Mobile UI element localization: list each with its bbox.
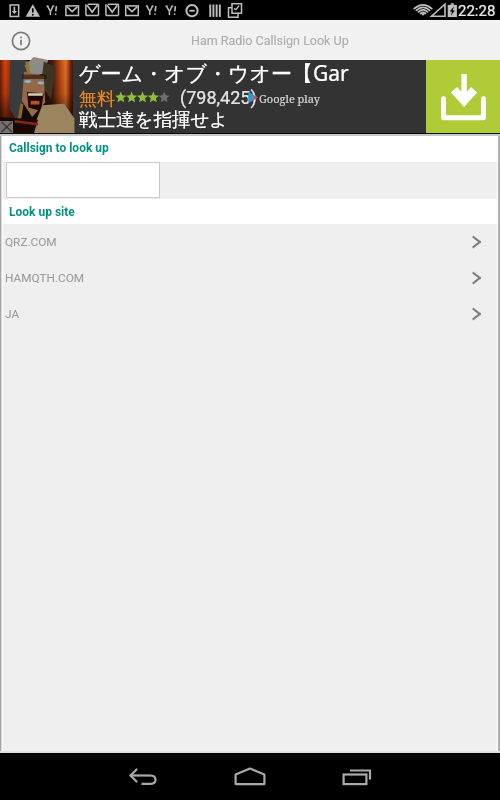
button[interactable]: QRZ.COM [0, 224, 500, 260]
staticText: ゲーム・オブ・ウオー【Gar [79, 59, 349, 88]
button[interactable]: HAMQTH.COM [0, 260, 500, 296]
staticText: JA [5, 307, 20, 321]
button[interactable]: Home [220, 753, 280, 800]
staticText: QRZ.COM [5, 235, 57, 249]
button[interactable]: Close ad [0, 60, 500, 133]
button[interactable]: Recent apps [325, 753, 385, 800]
button[interactable]: Close ad [0, 121, 13, 133]
staticText: Ham Radio Callsign Look Up [191, 33, 349, 48]
staticText: 22:28 [458, 2, 496, 20]
button[interactable]: Callsign input [6, 162, 160, 198]
button[interactable]: Install [426, 60, 500, 133]
button[interactable]: JA [0, 296, 500, 332]
button[interactable]: Back [112, 753, 172, 800]
staticText: 無料 [79, 88, 115, 111]
staticText: Google play [259, 91, 320, 106]
staticText: (798,425) [180, 87, 257, 108]
staticText: Look up site [9, 205, 75, 219]
button[interactable]: Info [0, 21, 42, 60]
staticText: Callsign to look up [9, 141, 109, 155]
staticText: HAMQTH.COM [5, 271, 85, 285]
staticText: 戦士達を指揮せよ [79, 108, 229, 131]
